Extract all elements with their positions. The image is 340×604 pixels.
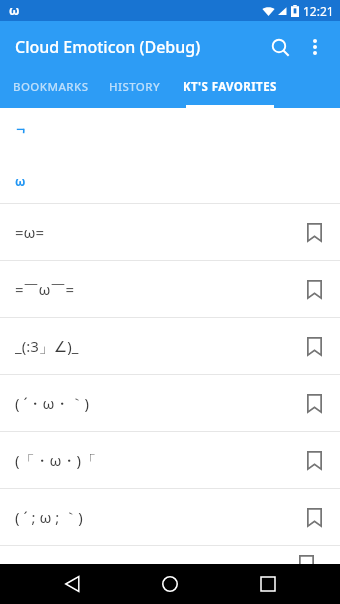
button[interactable]: Bookmark [292, 210, 336, 254]
staticText: ( ´ ; ω ; ｀) [15, 507, 292, 527]
staticText: Cloud Emoticon (Debug) [15, 36, 201, 58]
button[interactable]: ᄀ [0, 108, 340, 158]
button[interactable]: HISTORY [93, 73, 177, 108]
staticText: HISTORY [109, 79, 161, 95]
staticText: _(:3」∠)_ [15, 336, 292, 356]
button[interactable]: =￣ω￣= [0, 261, 340, 317]
button[interactable]: Home [144, 564, 196, 604]
staticText: ω [15, 173, 26, 189]
button[interactable]: Back [46, 564, 98, 604]
button[interactable]: Search [262, 29, 298, 65]
staticText: (「・ω・)「 [15, 450, 292, 470]
staticText: KT'S FAVORITES [183, 79, 277, 95]
button[interactable] [0, 546, 340, 564]
button[interactable]: ( ´・ω・｀) [0, 375, 340, 431]
button[interactable]: Bookmark [292, 495, 336, 539]
button[interactable]: KT'S FAVORITES [177, 73, 282, 108]
staticText: BOOKMARKS [13, 79, 89, 95]
button[interactable]: Bookmark [292, 438, 336, 482]
button[interactable]: BOOKMARKS [9, 73, 93, 108]
button[interactable]: _(:3」∠)_ [0, 318, 340, 374]
button[interactable]: (「・ω・)「 [0, 432, 340, 488]
button[interactable]: Recent apps [242, 564, 294, 604]
staticText: ω [9, 2, 20, 18]
button[interactable]: Bookmark [292, 324, 336, 368]
staticText: 12:21 [303, 3, 334, 19]
staticText: =￣ω￣= [15, 279, 292, 299]
button[interactable]: More options [298, 30, 332, 64]
button[interactable]: Bookmark [292, 381, 336, 425]
button[interactable]: ω [0, 158, 340, 203]
staticText: =ω= [15, 222, 292, 242]
button[interactable]: =ω= [0, 204, 340, 260]
button[interactable]: Bookmark [292, 267, 336, 311]
staticText: ( ´・ω・｀) [15, 393, 292, 413]
button[interactable]: ( ´ ; ω ; ｀) [0, 489, 340, 545]
staticText: ᄀ [15, 126, 27, 140]
